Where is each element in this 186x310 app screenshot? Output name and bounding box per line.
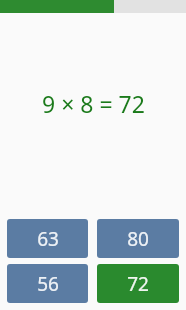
staticText: 63 [37, 226, 59, 252]
staticText: 80 [127, 226, 149, 252]
button[interactable]: Answer 56 [7, 264, 88, 303]
button[interactable]: Answer 72 [97, 264, 179, 303]
staticText: 9 × 8 = 72 [42, 88, 145, 119]
staticText: 56 [37, 271, 59, 297]
button[interactable]: Answer 63 [7, 219, 88, 258]
staticText: 72 [127, 271, 149, 297]
button[interactable]: Answer 80 [97, 219, 179, 258]
